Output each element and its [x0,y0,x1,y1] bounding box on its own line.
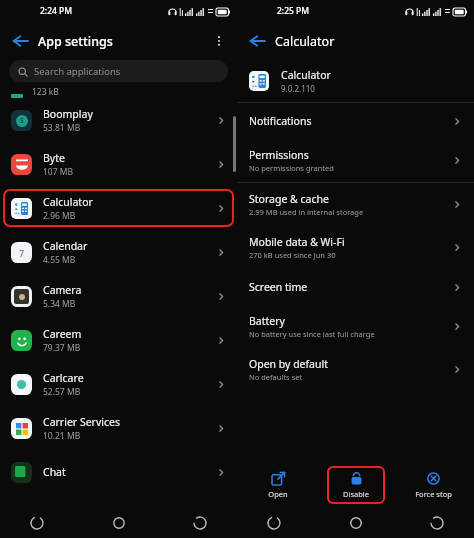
staticText: 107 MB [43,166,74,178]
button[interactable]: Careem [0,318,237,362]
staticText: Screen time [249,280,308,294]
button[interactable]: Battery [249,305,462,348]
staticText: No battery use since last full charge [249,329,375,339]
staticText: Camera [43,283,82,297]
staticText: Mobile data & Wi-Fi [249,235,345,249]
staticText: 2:24 PM [40,5,73,17]
button[interactable]: Chat [0,450,237,494]
staticText: Notifications [249,114,312,128]
button[interactable]: 7 [0,230,237,274]
staticText: Force stop [415,489,452,499]
staticText: Careem [43,327,82,341]
button[interactable]: More options [206,28,232,54]
staticText: 7 [19,247,25,259]
staticText: Permissions [249,148,309,162]
button[interactable] [327,466,385,504]
staticText: 52.57 MB [43,386,81,398]
staticText: Calculator [43,195,93,209]
button[interactable]: Carrier Services [0,406,237,450]
button[interactable]: Recents [261,510,287,536]
staticText: 2.96 MB [43,210,76,222]
button[interactable]: Notifications [249,103,462,139]
staticText: Calendar [43,239,88,253]
button[interactable]: Home [343,510,369,536]
button[interactable]: Storage & cache [249,183,462,226]
button[interactable]: Byte [0,142,237,186]
staticText: 270 kB used since Jun 30 [249,250,336,260]
staticText: No defaults set [249,372,303,382]
staticText: 2.99 MB used in internal storage [249,207,364,217]
staticText: Battery [249,314,285,328]
staticText: Disable [343,489,369,499]
button[interactable]: Camera [0,274,237,318]
button[interactable]: Open [249,472,307,499]
staticText: 53.81 MB [43,122,81,134]
staticText: 2:25 PM [277,5,310,17]
staticText: No permissions granted [249,163,334,173]
button[interactable]: Recents [24,510,50,536]
staticText: Chat [43,465,66,479]
button[interactable]: Permissions [249,139,462,182]
staticText: Open by default [249,357,329,371]
staticText: 9.0.2.110 [281,83,315,94]
staticText: 5.34 MB [43,298,76,310]
staticText: Carlcare [43,371,84,385]
button[interactable]: Open by default [249,348,462,391]
staticText: Calculator [281,68,331,82]
button[interactable]: Back [187,510,213,536]
button[interactable]: Back [424,510,450,536]
staticText: Carrier Services [43,415,120,429]
button[interactable]: Carlcare [0,362,237,406]
button[interactable]: Screen time [249,269,462,305]
staticText: Search applications [34,65,121,78]
staticText: 4.55 MB [43,254,76,266]
staticText: 79.37 MB [43,342,81,354]
staticText: Byte [43,151,65,165]
button[interactable]: Disable [327,472,385,499]
button[interactable]: Mobile data & Wi-Fi [249,226,462,269]
staticText: Boomplay [43,107,93,121]
button[interactable]: Back [242,26,272,56]
staticText: Calculator [275,33,335,50]
staticText: Storage & cache [249,192,329,206]
button[interactable]: Force stop [404,472,462,499]
button[interactable]: Home [106,510,132,536]
button[interactable]: Back [5,26,35,56]
staticText: 123 kB [32,86,59,98]
button[interactable] [3,189,234,227]
staticText: App settings [38,33,113,50]
staticText: Open [268,489,288,499]
button[interactable]: S [0,98,237,142]
button[interactable]: Calculator [237,60,474,102]
staticText: 10.21 MB [43,430,81,442]
button[interactable]: Search applications [9,60,228,82]
staticText: S [20,116,24,126]
